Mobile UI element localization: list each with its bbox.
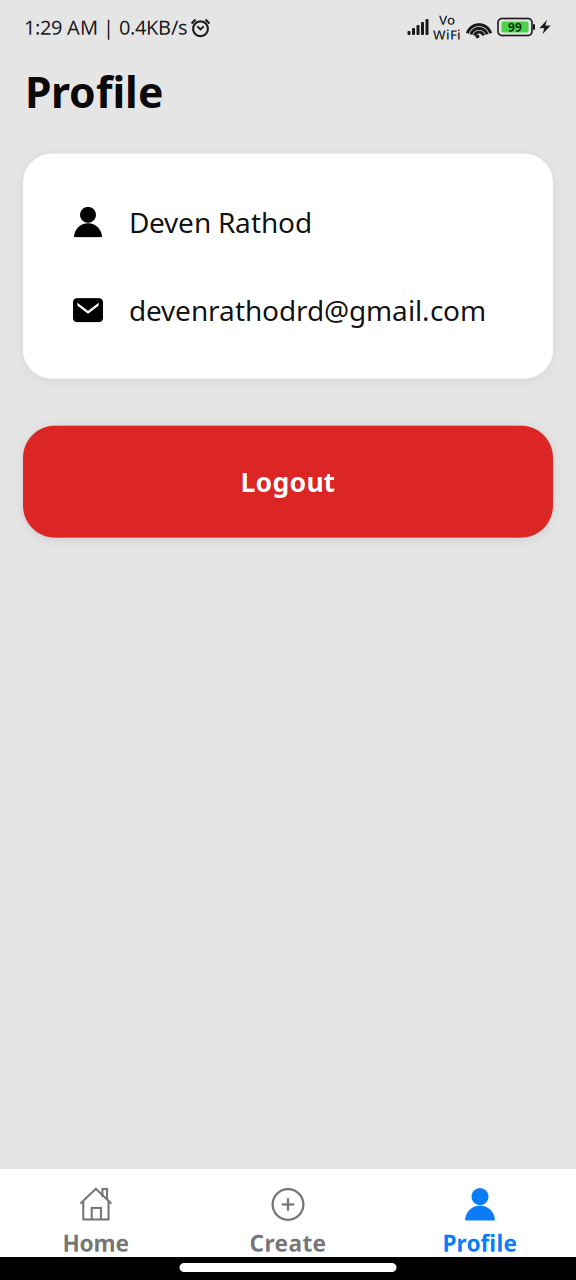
staticText: Home	[62, 1228, 129, 1258]
button[interactable]: Create	[192, 1162, 384, 1264]
staticText: WiFi	[433, 25, 461, 43]
staticText: 99	[508, 19, 522, 35]
staticText: Deven Rathod	[129, 204, 312, 241]
staticText: 1:29 AM | 0.4KB/s	[24, 14, 188, 40]
button[interactable]: Profile	[384, 1162, 576, 1264]
staticText: devenrathodrd@gmail.com	[129, 292, 486, 329]
staticText: Profile	[25, 63, 163, 120]
staticText: Vo	[439, 11, 455, 28]
staticText: Create	[249, 1228, 326, 1258]
staticText: Profile	[442, 1228, 517, 1258]
button[interactable]: Home	[0, 1162, 192, 1264]
button[interactable]: Logout	[23, 426, 553, 538]
staticText: Logout	[240, 464, 335, 499]
